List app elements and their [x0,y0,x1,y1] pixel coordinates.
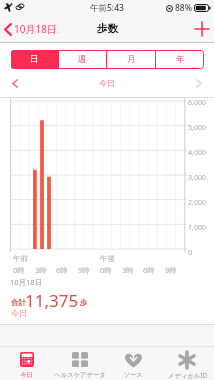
button[interactable]: ヘルスケアデータ [53,347,106,380]
staticText: ソース [123,371,143,379]
staticText: 午前5:43 [90,2,124,14]
staticText: 0 [188,248,193,258]
button[interactable]: 月 [107,50,155,69]
button[interactable]: 週 [59,50,106,69]
staticText: 午後 [100,254,115,263]
staticText: 1,000 [188,223,206,233]
button[interactable]: Next day [184,74,214,93]
button[interactable]: 10月18日 [0,19,65,39]
button[interactable]: ソース [106,347,160,380]
button[interactable]: Previous day [0,74,30,93]
staticText: 月 [127,54,136,65]
button[interactable]: 今日 [0,347,53,380]
staticText: 6,000 [188,98,206,108]
button[interactable]: 日 [11,50,58,69]
staticText: 2,000 [188,198,206,208]
staticText: 4,000 [188,148,206,158]
staticText: 10月18日 [14,22,57,36]
staticText: 9時 [165,265,177,275]
staticText: 88% [175,2,192,14]
button[interactable]: 年 [156,50,204,69]
staticText: 9時 [78,265,90,275]
staticText: 3時 [122,265,134,275]
staticText: 6時 [143,265,155,275]
staticText: メディカルID [168,371,207,380]
staticText: 11,375 [25,289,79,312]
staticText: 10月18日 [10,277,43,287]
staticText: 今日 [11,308,27,318]
staticText: ヘルスケアデータ [54,371,106,379]
staticText: 週 [78,54,87,65]
staticText: 年 [176,54,185,65]
staticText: 午前 [13,254,28,263]
staticText: 合計 [11,298,26,307]
staticText: 5,000 [188,123,206,133]
staticText: 日 [30,54,39,65]
staticText: 歩数 [97,22,118,35]
button[interactable]: Add [190,18,214,40]
staticText: 3時 [35,265,47,275]
staticText: 歩 [80,298,88,307]
staticText: 0時 [100,265,112,275]
button[interactable]: メディカルID [160,347,214,380]
staticText: 0時 [13,265,25,275]
staticText: 今日 [20,371,33,379]
staticText: 6時 [56,265,68,275]
staticText: 今日 [99,78,115,88]
staticText: 3,000 [188,173,206,183]
